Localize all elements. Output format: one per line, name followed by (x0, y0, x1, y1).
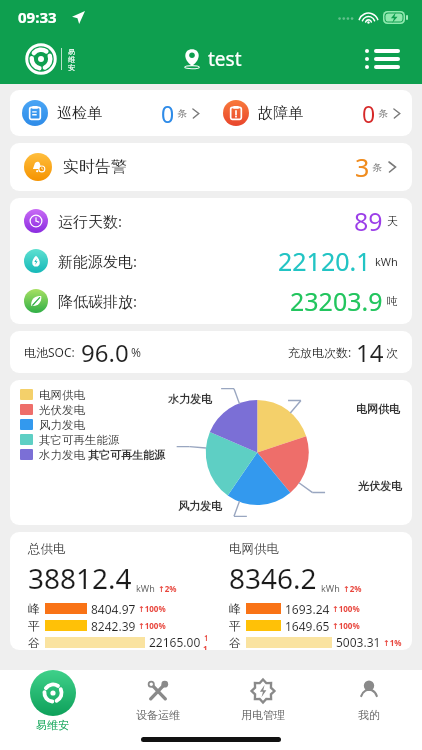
staticText: ↑100% (332, 603, 360, 614)
staticText: 充放电次数: (288, 344, 352, 360)
button[interactable]: 设备运维 (105, 670, 210, 732)
staticText: ↑100% (138, 603, 166, 614)
staticText: 23203.9 (290, 284, 383, 318)
staticText: 8404.97 (91, 601, 136, 617)
staticText: 电池SOC: (24, 344, 75, 360)
staticText: 89 (354, 204, 383, 238)
staticText: ↑100% (138, 620, 166, 631)
staticText: 谷 (28, 635, 40, 650)
staticText: 峰 (229, 601, 241, 616)
staticText: 22165.00 (149, 634, 201, 650)
staticText: 5003.31 (336, 634, 381, 650)
staticText: 96.0 (81, 336, 129, 369)
staticText: ↑2% (343, 583, 362, 594)
staticText: ↑1% (203, 634, 207, 650)
staticText: 降低碳排放: (58, 291, 138, 311)
staticText: ↑2% (158, 583, 177, 594)
staticText: 3 (355, 150, 370, 184)
staticText: 水力发电 (39, 448, 85, 462)
staticText: 09:33 (18, 7, 57, 27)
staticText: 1649.65 (285, 618, 330, 634)
staticText: % (131, 344, 141, 360)
button[interactable]: 故障单 (211, 90, 412, 136)
staticText: 风力发电 (178, 499, 222, 513)
staticText: 天 (387, 214, 398, 228)
staticText: 电网供电 (229, 541, 279, 557)
staticText: 22120.1 (278, 244, 371, 278)
button[interactable]: 易维安 (0, 670, 105, 732)
staticText: 易维安 (66, 47, 77, 72)
staticText: 8346.2 (229, 559, 317, 597)
staticText: 0 (362, 98, 376, 129)
staticText: 风力发电 (39, 418, 85, 432)
staticText: 条 (372, 161, 382, 174)
staticText: 新能源发电: (58, 251, 138, 271)
staticText: ↑100% (332, 620, 360, 631)
staticText: 平 (28, 618, 40, 633)
staticText: 吨 (387, 294, 398, 308)
staticText: 实时告警 (63, 157, 127, 177)
staticText: 电网供电 (356, 402, 400, 416)
button[interactable]: test (181, 46, 242, 72)
staticText: 光伏发电 (358, 479, 402, 493)
staticText: 用电管理 (241, 708, 285, 722)
staticText: 峰 (28, 601, 40, 616)
staticText: 故障单 (258, 104, 303, 123)
button[interactable]: Logo (26, 44, 77, 74)
staticText: 我的 (358, 708, 380, 722)
button[interactable]: Menu (365, 49, 400, 69)
staticText: 1693.24 (285, 601, 330, 617)
staticText: 光伏发电 (39, 403, 85, 417)
button[interactable]: 巡检单 (10, 90, 211, 136)
button[interactable]: 实时告警 (10, 143, 412, 191)
staticText: 条 (177, 107, 187, 120)
staticText: kWh (136, 582, 155, 594)
staticText: 水力发电 (168, 392, 212, 406)
staticText: 设备运维 (136, 708, 180, 722)
staticText: 38812.4 (28, 559, 132, 597)
staticText: 谷 (229, 635, 241, 650)
staticText: test (208, 46, 242, 72)
staticText: 次 (386, 345, 398, 360)
staticText: 巡检单 (57, 104, 102, 123)
staticText: 总供电 (28, 541, 66, 557)
staticText: 其它可再生能源 (88, 448, 165, 462)
staticText: 14 (356, 336, 384, 369)
staticText: 平 (229, 618, 241, 633)
staticText: ↑1% (383, 637, 402, 648)
staticText: 其它可再生能源 (39, 433, 120, 447)
button[interactable]: 用电管理 (210, 670, 316, 732)
staticText: 8242.39 (91, 618, 136, 634)
staticText: kWh (375, 254, 398, 269)
staticText: kWh (321, 582, 340, 594)
staticText: 电网供电 (39, 388, 85, 402)
staticText: 条 (378, 107, 388, 120)
staticText: 0 (161, 98, 175, 129)
staticText: 易维安 (36, 718, 69, 732)
button[interactable]: 我的 (316, 670, 422, 732)
staticText: 运行天数: (58, 211, 123, 231)
